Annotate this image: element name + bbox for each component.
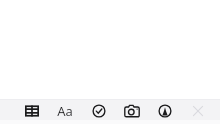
staticText: Aa [57,102,73,120]
button[interactable]: Markup [150,101,180,121]
button[interactable]: Aa [50,101,80,121]
button[interactable]: Table [17,101,47,121]
button[interactable]: Camera [117,101,147,121]
button[interactable]: Checklist [84,101,114,121]
button[interactable]: Close [183,101,213,121]
